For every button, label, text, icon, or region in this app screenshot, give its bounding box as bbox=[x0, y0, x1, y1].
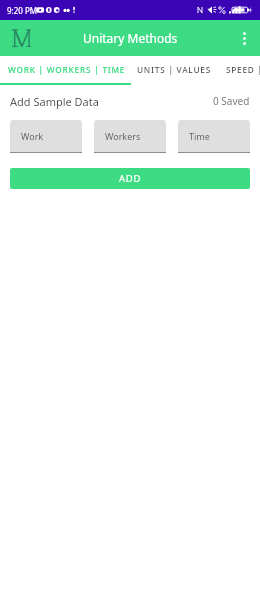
staticText: WORK | WORKERS | TIME bbox=[8, 64, 126, 75]
staticText: 9:20 PM bbox=[7, 5, 38, 16]
staticText: Time bbox=[189, 130, 210, 142]
button[interactable]: Work bbox=[10, 120, 82, 153]
staticText: 0 Saved bbox=[213, 94, 250, 108]
staticText: ADD bbox=[119, 172, 142, 185]
staticText: SPEED | TIME bbox=[226, 64, 260, 75]
button[interactable]: UNITS | VALUES bbox=[134, 56, 214, 83]
button[interactable]: WORK | WORKERS | TIME bbox=[0, 56, 134, 83]
staticText: UNITS | VALUES bbox=[137, 64, 211, 75]
staticText: Work bbox=[21, 130, 44, 142]
staticText: Workers bbox=[105, 130, 141, 142]
button[interactable]: More options bbox=[230, 20, 258, 56]
button[interactable]: Workers bbox=[94, 120, 166, 153]
button[interactable]: SPEED | TIME bbox=[214, 56, 260, 83]
staticText: Unitary Methods bbox=[83, 30, 178, 46]
staticText: Add Sample Data bbox=[10, 94, 99, 109]
button[interactable]: ADD bbox=[10, 168, 250, 189]
button[interactable]: Time bbox=[178, 120, 250, 153]
